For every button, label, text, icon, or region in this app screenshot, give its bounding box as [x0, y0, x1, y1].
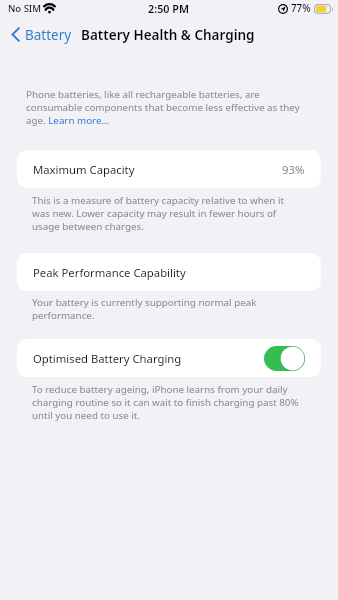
staticText: Your battery is currently supporting nor… — [32, 296, 300, 322]
button[interactable]: Optimised Battery Charging toggle — [264, 346, 305, 371]
staticText: This is a measure of battery capacity re… — [32, 194, 300, 233]
staticText: Optimised Battery Charging — [33, 351, 182, 366]
staticText: Battery Health & Charging — [81, 26, 255, 44]
button[interactable]: Peak Performance Capability — [17, 253, 321, 291]
staticText: Peak Performance Capability — [33, 265, 186, 280]
staticText: Maximum Capacity — [33, 162, 135, 177]
staticText: Phone batteries, like all rechargeable b… — [26, 88, 304, 127]
staticText: 93% — [282, 162, 305, 177]
staticText: 77% — [291, 2, 311, 15]
button[interactable]: Optimised Battery Charging — [17, 339, 321, 377]
staticText: Battery — [25, 26, 72, 44]
button[interactable]: Battery — [0, 23, 78, 47]
staticText: To reduce battery ageing, iPhone learns … — [32, 383, 300, 422]
button[interactable]: Maximum Capacity — [17, 150, 321, 188]
staticText: No SIM — [8, 2, 41, 15]
staticText: 2:50 PM — [148, 1, 189, 16]
